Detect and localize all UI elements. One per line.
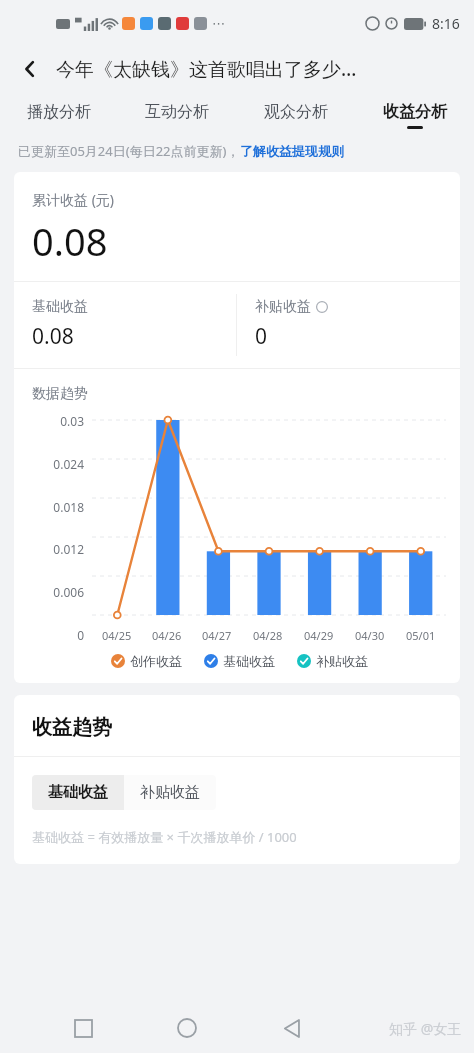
button[interactable]: 互动分析: [118, 92, 236, 138]
staticText: 04/30: [355, 628, 385, 643]
button[interactable]: 基础收益: [32, 775, 124, 810]
button[interactable]: 收益分析: [355, 92, 474, 138]
button[interactable]: 补贴收益: [124, 775, 216, 810]
button[interactable]: Back: [10, 49, 50, 89]
staticText: 互动分析: [145, 102, 209, 122]
staticText: 累计收益 (元): [32, 190, 115, 209]
staticText: 收益趋势: [32, 715, 112, 740]
staticText: 创作收益: [130, 653, 182, 669]
button[interactable]: Back: [270, 1006, 314, 1050]
staticText: 播放分析: [27, 102, 91, 122]
button[interactable]: 观众分析: [236, 92, 355, 138]
staticText: 0.018: [32, 499, 84, 515]
staticText: 05/01: [406, 628, 436, 643]
staticText: 0: [32, 627, 84, 643]
staticText: 8:16: [432, 14, 460, 33]
staticText: 补贴收益: [316, 653, 368, 669]
staticText: 了解收益提现规则: [240, 143, 344, 159]
button[interactable]: 补贴收益: [237, 282, 460, 368]
staticText: 04/26: [152, 628, 182, 643]
staticText: 0.03: [32, 413, 84, 429]
button[interactable]: Home: [165, 1006, 209, 1050]
button[interactable]: Recents: [61, 1006, 105, 1050]
staticText: 0: [255, 322, 268, 351]
staticText: 观众分析: [264, 102, 328, 122]
button[interactable]: 了解收益提现规则: [240, 143, 344, 159]
staticText: 0.08: [32, 322, 74, 351]
staticText: 数据趋势: [32, 385, 88, 403]
staticText: 04/29: [304, 628, 334, 643]
staticText: 今年《太缺钱》这首歌唱出了多少…: [56, 56, 357, 82]
staticText: ⋯: [212, 16, 225, 31]
button[interactable]: 基础收益: [14, 282, 236, 368]
button[interactable]: 补贴收益: [297, 653, 368, 669]
button[interactable]: 基础收益: [204, 653, 275, 669]
staticText: 知乎 @女王: [389, 1019, 462, 1038]
button[interactable]: 播放分析: [0, 92, 118, 138]
staticText: 基础收益: [48, 783, 108, 802]
staticText: 基础收益: [223, 653, 275, 669]
staticText: 04/27: [202, 628, 232, 643]
staticText: 04/25: [102, 628, 132, 643]
staticText: 补贴收益: [140, 783, 200, 802]
staticText: 0.006: [32, 584, 84, 600]
staticText: 0.024: [32, 456, 84, 472]
staticText: 补贴收益: [255, 298, 311, 316]
staticText: 已更新至05月24日(每日22点前更新)，: [18, 142, 240, 160]
staticText: 基础收益 = 有效播放量 × 千次播放单价 / 1000: [32, 828, 297, 846]
staticText: 收益分析: [383, 102, 447, 122]
staticText: 0.08: [32, 215, 108, 267]
staticText: 基础收益: [32, 298, 88, 316]
button[interactable]: 创作收益: [111, 653, 182, 669]
staticText: 04/28: [253, 628, 283, 643]
staticText: 0.012: [32, 541, 84, 557]
